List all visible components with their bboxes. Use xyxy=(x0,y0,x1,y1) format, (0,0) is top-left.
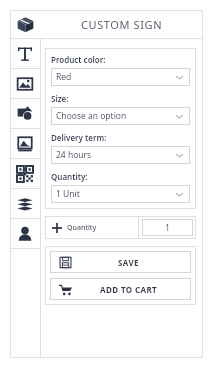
button[interactable]: 24 hours xyxy=(51,146,190,164)
button[interactable]: 1 xyxy=(142,219,193,236)
staticText: Quantity xyxy=(67,223,97,233)
button[interactable]: QR code xyxy=(10,159,40,189)
button[interactable]: Image xyxy=(10,69,40,99)
button[interactable]: Clipart xyxy=(10,99,40,129)
button[interactable]: ADD TO CART xyxy=(50,278,191,300)
staticText: 1 xyxy=(165,222,170,233)
button[interactable]: Layers xyxy=(10,189,40,219)
button[interactable]: Red xyxy=(51,68,190,86)
staticText: Delivery term: xyxy=(51,132,107,143)
staticText: Choose an option xyxy=(56,110,175,122)
button[interactable]: SAVE xyxy=(50,251,191,273)
staticText: Product color: xyxy=(51,54,106,65)
staticText: 1 Unit xyxy=(56,188,175,200)
button[interactable]: Account xyxy=(10,219,40,249)
staticText: Size: xyxy=(51,93,69,104)
staticText: Red xyxy=(56,71,175,83)
button[interactable]: Choose an option xyxy=(51,107,190,125)
staticText: 24 hours xyxy=(56,149,175,161)
staticText: Quantity: xyxy=(51,171,88,182)
staticText: CUSTOM SIGN xyxy=(81,17,163,32)
staticText: SAVE xyxy=(118,257,139,268)
button[interactable]: Album xyxy=(10,129,40,159)
button[interactable]: Quantity xyxy=(45,216,138,239)
staticText: ADD TO CART xyxy=(100,284,158,295)
button[interactable]: Text xyxy=(10,39,40,69)
button[interactable]: Product xyxy=(17,16,34,33)
button[interactable]: 1 Unit xyxy=(51,185,190,203)
